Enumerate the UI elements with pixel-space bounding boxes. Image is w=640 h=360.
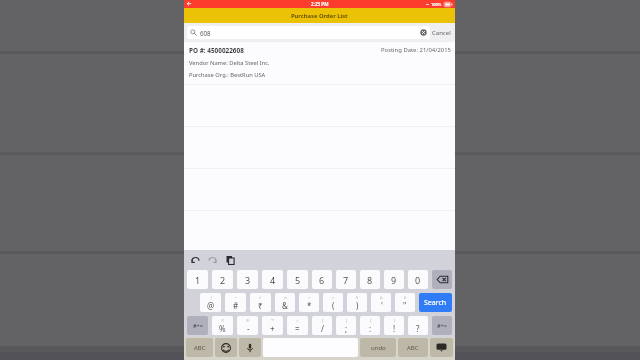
button[interactable]: 7 [336, 270, 356, 289]
staticText: 4 [270, 274, 276, 286]
staticText: ₹ [258, 300, 263, 311]
staticText: Search [424, 298, 447, 308]
button[interactable]: ® [237, 316, 258, 335]
button[interactable]: Backspace [432, 270, 452, 289]
staticText: ABC [194, 344, 206, 352]
staticText: × [332, 295, 335, 300]
button[interactable]: #+= [432, 316, 452, 335]
staticText: % [219, 323, 226, 334]
staticText: ? [416, 323, 420, 334]
staticText: 608 [200, 29, 211, 37]
button[interactable]: £ [395, 293, 415, 312]
staticText: 3 [245, 274, 251, 286]
button[interactable]: © [212, 316, 233, 335]
staticText: undo [371, 344, 386, 352]
button[interactable]: Purchase Order List [184, 8, 455, 23]
staticText: 0 [415, 274, 421, 286]
button[interactable]: Undo [191, 255, 200, 264]
button[interactable]: Back [184, 0, 196, 8]
button[interactable] [184, 253, 455, 294]
button[interactable]: [ [312, 316, 332, 335]
button[interactable]: Emoji [215, 338, 237, 357]
button[interactable]: Δ [371, 293, 391, 312]
button[interactable]: | [200, 293, 221, 312]
button[interactable]: 9 [384, 270, 404, 289]
button[interactable]: ABC [186, 338, 213, 357]
staticText: PO #: 4500022608 [189, 46, 244, 55]
staticText: @ [207, 300, 215, 311]
staticText: #+= [193, 322, 203, 329]
button[interactable]: Copy [225, 255, 234, 264]
staticText: Posting Date: 21/04/2015 [381, 46, 451, 54]
staticText: ; [345, 323, 348, 334]
button[interactable]: π [275, 293, 295, 312]
button[interactable]: • [225, 293, 246, 312]
button[interactable]: ÷ [299, 293, 319, 312]
button[interactable]: 6 [312, 270, 332, 289]
staticText: ÷ [308, 295, 311, 300]
button[interactable]: #+= [187, 316, 208, 335]
staticText: " [403, 300, 407, 311]
button[interactable]: Hide keyboard [430, 338, 453, 357]
button[interactable]: PO #: 4500022608 [184, 42, 455, 84]
staticText: # [233, 300, 239, 311]
button[interactable]: ] [336, 316, 356, 335]
button[interactable]: undo [360, 338, 396, 357]
staticText: Vendor Name: Delta Steel Inc. [189, 59, 270, 67]
button[interactable]: 4 [262, 270, 283, 289]
button[interactable] [184, 211, 455, 252]
button[interactable]: § [347, 293, 367, 312]
button[interactable]: Search [419, 293, 452, 312]
button[interactable]: Voice input [239, 338, 261, 357]
staticText: 5 [295, 274, 301, 286]
button[interactable]: 5 [287, 270, 308, 289]
staticText: 7 [343, 274, 349, 286]
staticText: [ [322, 318, 324, 323]
staticText: 9 [391, 274, 397, 286]
button[interactable]: 608 [187, 26, 430, 39]
staticText: { [370, 318, 372, 323]
staticText: π [284, 295, 287, 300]
staticText: 100% [431, 2, 442, 7]
staticText: Δ [380, 295, 383, 300]
button[interactable]: 1 [187, 270, 208, 289]
button[interactable]: · [408, 316, 428, 335]
button[interactable]: ✓ [287, 316, 308, 335]
staticText: § [356, 295, 359, 300]
button[interactable]: Redo [208, 255, 217, 264]
staticText: ! [393, 323, 396, 334]
staticText: Purchase Org.: BestRun USA [189, 71, 266, 79]
staticText: ABC [407, 344, 419, 352]
button[interactable]: Cancel [430, 27, 453, 39]
staticText: ) [356, 300, 359, 311]
staticText: 2:25 PM [311, 1, 329, 7]
button[interactable]: 8 [360, 270, 380, 289]
button[interactable]: 0 [408, 270, 428, 289]
staticText: | [210, 295, 213, 300]
button[interactable]: 3 [237, 270, 258, 289]
staticText: © [221, 318, 225, 323]
staticText: ] [346, 318, 348, 323]
staticText: ™ [271, 318, 275, 323]
staticText: ® [246, 318, 250, 323]
button[interactable]: } [384, 316, 404, 335]
button[interactable]: { [360, 316, 380, 335]
staticText: 6 [319, 274, 325, 286]
staticText: ( [332, 300, 335, 311]
button[interactable]: Clear text [419, 28, 428, 37]
staticText: Purchase Order List [291, 12, 348, 20]
staticText: · [417, 318, 419, 323]
button[interactable]: × [323, 293, 343, 312]
button[interactable]: ™ [262, 316, 283, 335]
staticText: #+= [437, 322, 447, 329]
staticText: ' [381, 300, 383, 311]
button[interactable]: √ [250, 293, 271, 312]
button[interactable]: 2 [212, 270, 233, 289]
button[interactable]: ABC [398, 338, 428, 357]
staticText: & [282, 300, 288, 311]
staticText: + [270, 323, 275, 334]
